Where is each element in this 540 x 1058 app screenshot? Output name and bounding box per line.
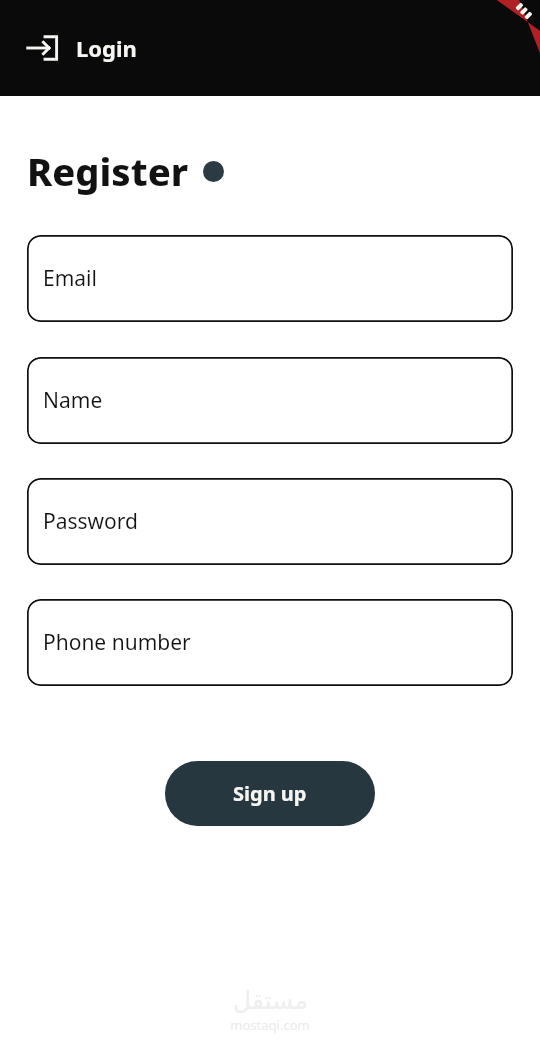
button[interactable]: Phone number bbox=[27, 599, 513, 686]
button[interactable]: Email bbox=[27, 235, 513, 322]
staticText: Phone number bbox=[43, 628, 191, 657]
staticText: Password bbox=[43, 507, 138, 536]
staticText: mostaqi.com bbox=[230, 1016, 310, 1034]
other: Login bbox=[26, 31, 60, 65]
staticText: Email bbox=[43, 264, 97, 293]
button[interactable]: Login bbox=[26, 31, 137, 65]
staticText: Login bbox=[76, 33, 137, 63]
button[interactable]: Sign up bbox=[165, 761, 375, 826]
button[interactable]: Name bbox=[27, 357, 513, 444]
staticText: Register bbox=[27, 145, 189, 197]
staticText: Sign up bbox=[233, 780, 307, 807]
staticText: Name bbox=[43, 386, 103, 415]
button[interactable]: Password bbox=[27, 478, 513, 565]
staticText: مستقل bbox=[233, 986, 308, 1015]
